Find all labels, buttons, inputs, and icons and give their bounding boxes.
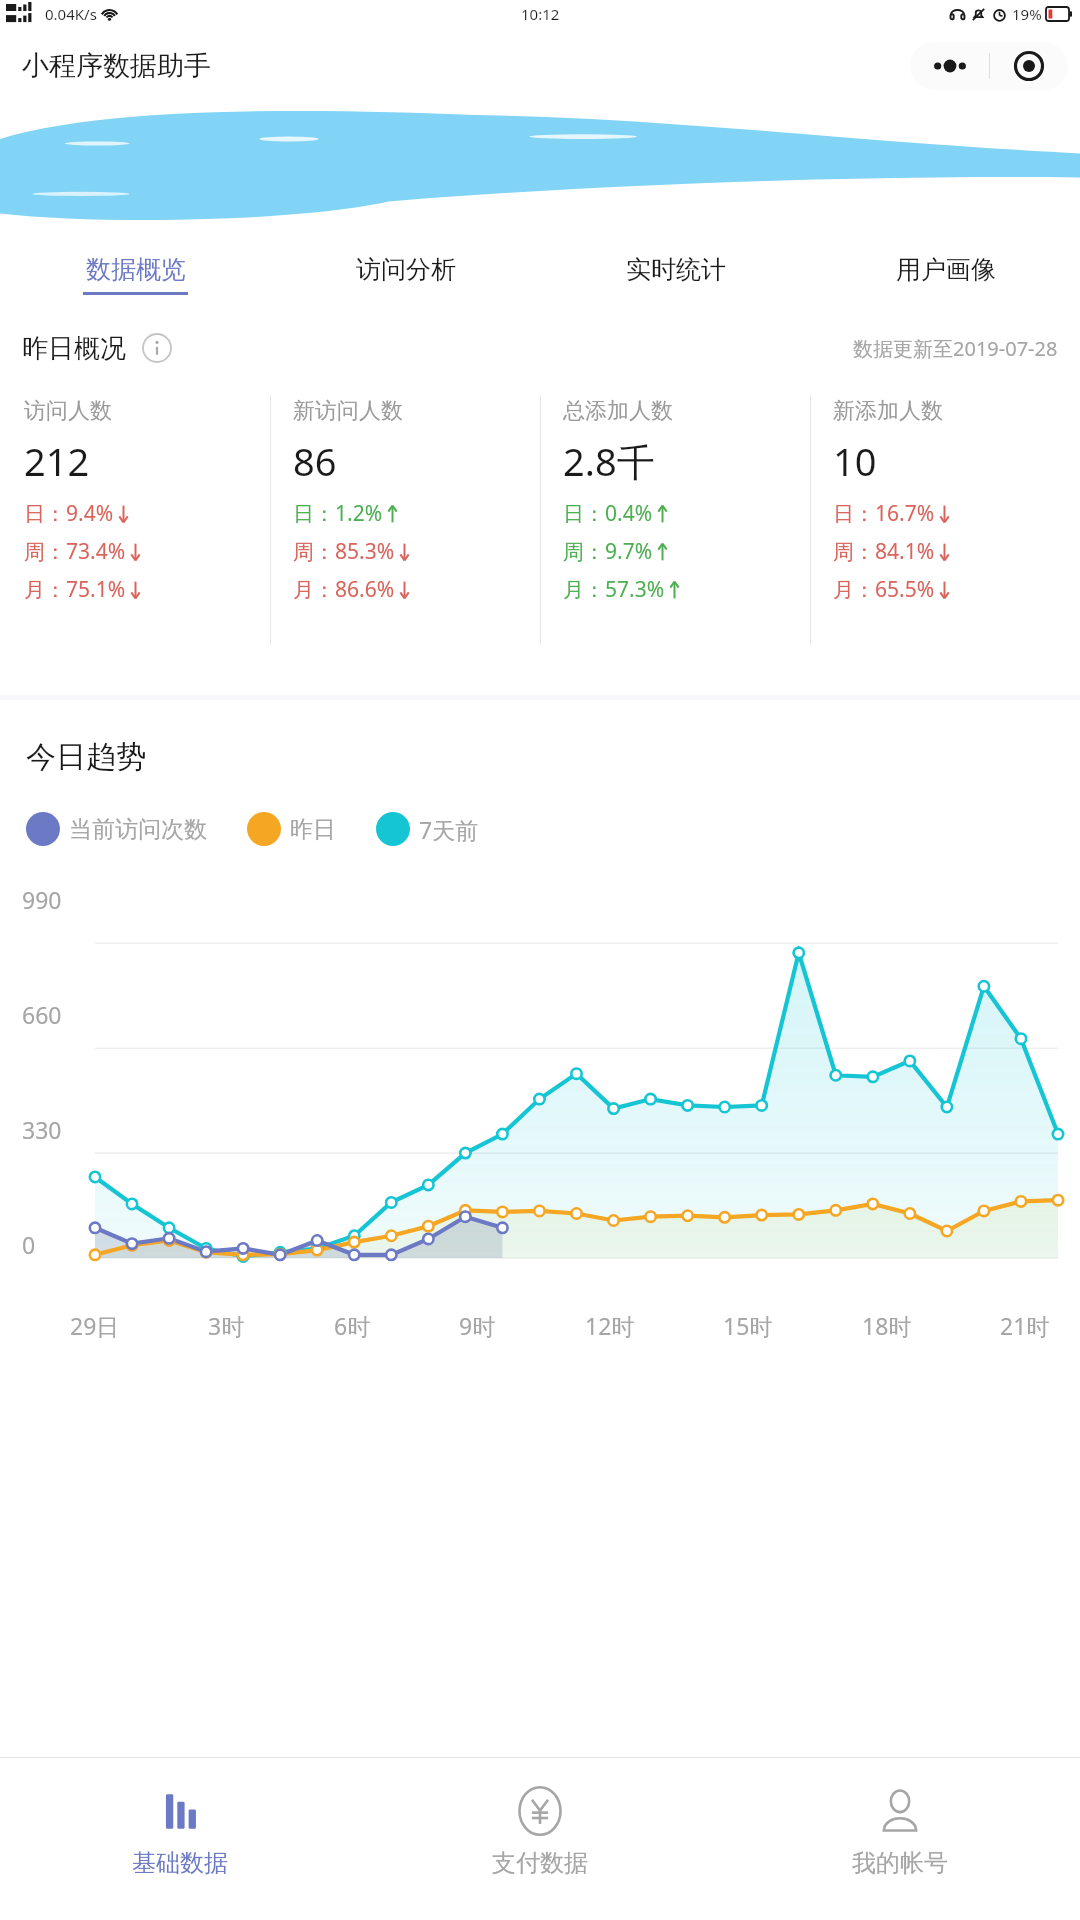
staticText: 15时: [723, 1310, 773, 1341]
button[interactable]: 我的帐号: [720, 1758, 1080, 1920]
staticText: 29日: [70, 1310, 120, 1341]
staticText: 月：75.1%: [24, 575, 126, 604]
button[interactable]: 昨日: [247, 812, 336, 846]
button[interactable]: 总添加人数: [541, 395, 810, 604]
button[interactable]: 新访问人数: [271, 395, 540, 604]
staticText: 19%: [1012, 4, 1042, 24]
staticText: 今日趋势: [26, 738, 146, 776]
staticText: 月：65.5%: [833, 575, 935, 604]
staticText: 10:12: [521, 4, 560, 24]
staticText: 周：85.3%: [293, 537, 395, 566]
button[interactable]: 用户画像: [810, 235, 1080, 313]
button[interactable]: Close: [990, 42, 1068, 90]
button[interactable]: 访问分析: [270, 235, 540, 313]
staticText: 990: [22, 884, 62, 915]
button[interactable]: 7天前: [376, 812, 479, 846]
staticText: 小程序数据助手: [22, 49, 211, 83]
button[interactable]: 实时统计: [540, 235, 810, 313]
staticText: 21时: [1000, 1310, 1050, 1341]
staticText: 支付数据: [492, 1848, 588, 1878]
staticText: 86: [293, 435, 337, 487]
staticText: 0: [22, 1229, 36, 1260]
staticText: 用户画像: [896, 254, 996, 285]
staticText: 基础数据: [132, 1848, 228, 1878]
staticText: 2.8千: [563, 435, 655, 487]
staticText: 10: [833, 435, 877, 487]
button[interactable]: 支付数据: [360, 1758, 720, 1920]
staticText: 月：86.6%: [293, 575, 395, 604]
staticText: 当前访问次数: [69, 815, 207, 844]
button[interactable]: 新添加人数: [811, 395, 1080, 604]
staticText: 日：0.4%: [563, 499, 653, 528]
staticText: 9时: [459, 1310, 496, 1341]
staticText: 周：73.4%: [24, 537, 126, 566]
staticText: 总添加人数: [563, 397, 673, 425]
staticText: 18时: [862, 1310, 912, 1341]
button[interactable]: 数据概览: [0, 235, 270, 313]
staticText: 月：57.3%: [563, 575, 665, 604]
button[interactable]: 基础数据: [0, 1758, 360, 1920]
staticText: 日：9.4%: [24, 499, 114, 528]
staticText: 日：1.2%: [293, 499, 383, 528]
staticText: 330: [22, 1114, 62, 1145]
staticText: 实时统计: [626, 254, 726, 285]
button[interactable]: 访问人数: [0, 395, 270, 604]
staticText: 我的帐号: [852, 1848, 948, 1878]
staticText: 访问人数: [24, 397, 112, 425]
staticText: 660: [22, 999, 62, 1030]
staticText: 212: [24, 435, 90, 487]
staticText: 新访问人数: [293, 397, 403, 425]
staticText: 周：84.1%: [833, 537, 935, 566]
staticText: 新添加人数: [833, 397, 943, 425]
staticText: 昨日概况: [22, 332, 126, 365]
button[interactable]: Information: [140, 331, 174, 365]
staticText: 0.04K/s: [45, 4, 97, 24]
staticText: 12时: [585, 1310, 635, 1341]
staticText: 6时: [334, 1310, 371, 1341]
staticText: 7天前: [419, 814, 479, 845]
staticText: 访问分析: [356, 254, 456, 285]
staticText: 数据更新至2019-07-28: [853, 335, 1058, 362]
staticText: 日：16.7%: [833, 499, 935, 528]
button[interactable]: 当前访问次数: [26, 812, 207, 846]
staticText: 昨日: [290, 815, 336, 844]
staticText: 3时: [208, 1310, 245, 1341]
staticText: 数据概览: [86, 254, 186, 285]
button[interactable]: More options: [911, 42, 989, 90]
button[interactable]: More options: [910, 42, 1068, 90]
staticText: 周：9.7%: [563, 537, 653, 566]
